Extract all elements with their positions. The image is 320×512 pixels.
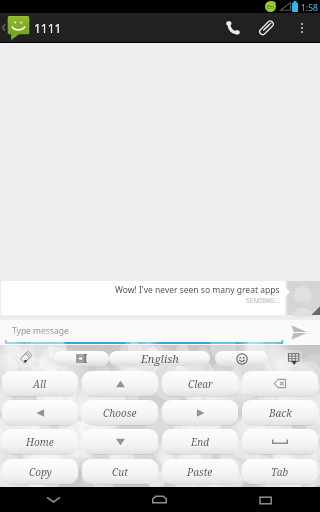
button[interactable]: UP	[82, 371, 158, 396]
staticText: Cut	[112, 465, 128, 479]
staticText: End	[191, 435, 210, 449]
staticText: All	[33, 377, 47, 391]
staticText: English	[141, 351, 179, 366]
button[interactable]: All	[2, 371, 78, 396]
button[interactable]	[215, 351, 268, 366]
button[interactable]: Wow! I've never seen so many great apps	[1, 281, 285, 315]
button[interactable]: Call	[216, 13, 250, 42]
button[interactable]: Send	[283, 320, 320, 345]
button[interactable]: Hide keyboard	[285, 350, 302, 367]
button[interactable]: BKSP	[242, 371, 318, 396]
button[interactable]: Home	[106, 487, 213, 512]
button[interactable]: 1111	[0, 13, 70, 42]
button[interactable]: Copy	[2, 459, 78, 484]
staticText: Choose	[103, 406, 137, 420]
staticText: SENDING...	[246, 296, 280, 305]
button[interactable]: Cut	[82, 459, 158, 484]
staticText: Copy	[29, 465, 52, 479]
staticText: Tab	[271, 465, 289, 479]
button[interactable]: End	[162, 429, 238, 454]
button[interactable]: DOWN	[82, 429, 158, 454]
staticText: Type message	[12, 325, 69, 337]
button[interactable]: Clear	[162, 371, 238, 396]
button[interactable]: Recents	[213, 487, 320, 512]
button[interactable]: English	[109, 351, 210, 366]
button[interactable]: Back	[242, 400, 318, 425]
button[interactable]: Choose	[82, 400, 158, 425]
staticText: 1111	[34, 20, 62, 36]
button[interactable]: Attach	[250, 13, 284, 42]
staticText: Wow! I've never seen so many great apps	[115, 284, 280, 296]
button[interactable]: More options	[284, 13, 320, 42]
staticText: Home	[26, 435, 54, 449]
button[interactable]: SPACE	[242, 429, 318, 454]
button[interactable]: Tab	[242, 459, 318, 484]
button[interactable]: Back	[0, 487, 106, 512]
staticText: En	[267, 3, 275, 11]
staticText: Clear	[188, 377, 213, 391]
staticText: Back	[269, 406, 292, 420]
button[interactable]: RIGHT	[162, 400, 238, 425]
button[interactable]: Paste	[162, 459, 238, 484]
button[interactable]: Home	[2, 429, 78, 454]
button[interactable]: Theme	[17, 350, 34, 367]
button[interactable]: LEFT	[2, 400, 78, 425]
button[interactable]	[54, 351, 109, 366]
staticText: Paste	[187, 465, 213, 479]
staticText: 1:58	[301, 2, 318, 14]
